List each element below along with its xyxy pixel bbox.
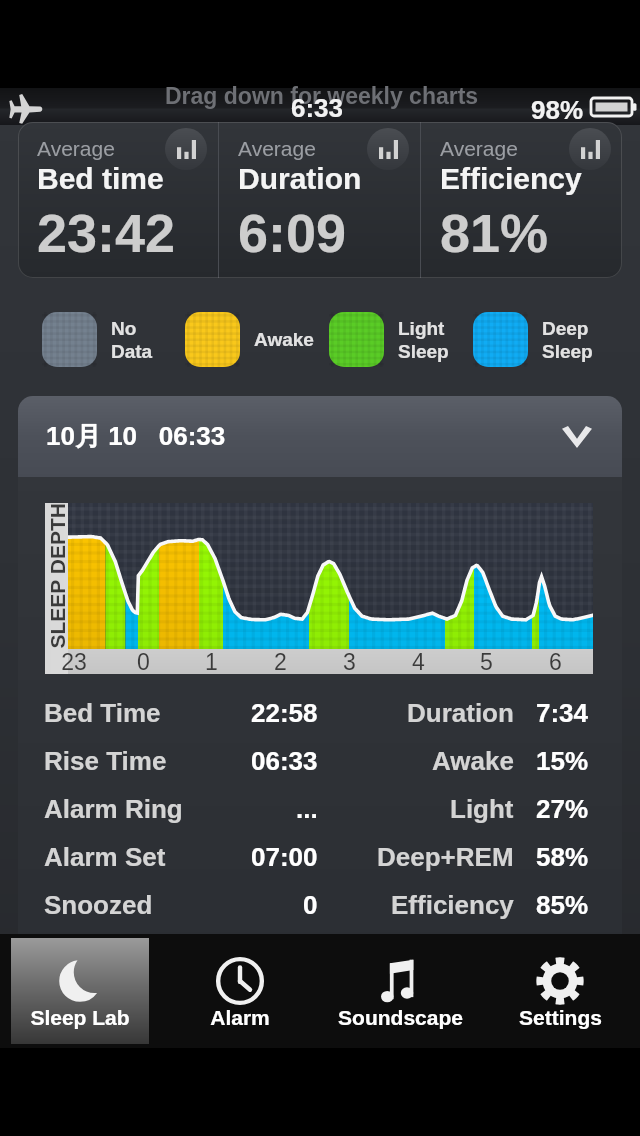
staticText: 6:09	[238, 203, 347, 263]
staticText: Settings	[519, 1006, 602, 1029]
staticText: Average	[440, 137, 518, 160]
staticText: Alarm Ring	[44, 794, 183, 823]
staticText: 27%	[536, 794, 589, 823]
staticText: SLEEP DEPTH	[45, 502, 68, 648]
staticText: 2	[274, 649, 287, 674]
button[interactable]: Alarm Ring	[18, 784, 622, 832]
staticText: Average	[37, 137, 115, 160]
staticText: 6	[549, 649, 562, 674]
staticText: 0	[303, 890, 318, 919]
button[interactable]: Expand	[562, 426, 592, 448]
staticText: 06:33	[251, 746, 318, 775]
button[interactable]: Settings	[491, 938, 629, 1044]
staticText: Alarm Set	[44, 842, 166, 871]
button[interactable]: Bed Time	[18, 688, 622, 736]
staticText: 6:33	[291, 93, 344, 122]
button[interactable]: Alarm Set	[18, 832, 622, 880]
staticText: 23	[61, 649, 87, 674]
staticText: Efficiency	[440, 162, 582, 196]
button[interactable]: Rise Time	[18, 736, 622, 784]
button[interactable]: Weekly chart	[569, 128, 611, 170]
staticText: 5	[480, 649, 493, 674]
button[interactable]: No Data	[42, 312, 153, 367]
button[interactable]: Average	[18, 122, 218, 278]
button[interactable]: Deep Sleep	[473, 312, 593, 367]
staticText: 7:34	[536, 698, 589, 727]
button[interactable]: 10月 10 06:33	[18, 396, 622, 477]
staticText: 85%	[536, 890, 589, 919]
staticText: Rise Time	[44, 746, 167, 775]
staticText: Light	[450, 794, 514, 823]
button[interactable]: Average	[219, 122, 420, 278]
button[interactable]: Light Sleep	[329, 312, 449, 367]
staticText: 58%	[536, 842, 589, 871]
staticText: 07:00	[251, 842, 318, 871]
staticText: 3	[343, 649, 356, 674]
staticText: 81%	[440, 203, 549, 263]
staticText: 23:42	[37, 203, 176, 263]
staticText: No Data	[111, 318, 153, 362]
button[interactable]: Awake	[185, 312, 314, 367]
staticText: 22:58	[251, 698, 318, 727]
staticText: Soundscape	[338, 1006, 463, 1029]
button[interactable]: Snoozed	[18, 880, 622, 928]
button[interactable]: Weekly chart	[165, 128, 207, 170]
staticText: Duration	[407, 698, 514, 727]
staticText: 98%	[531, 95, 584, 124]
staticText: Drag down for weekly charts	[165, 83, 479, 109]
staticText: Sleep Lab	[30, 1006, 130, 1029]
button[interactable]: Alarm	[171, 938, 309, 1044]
staticText: Deep Sleep	[542, 318, 593, 362]
staticText: 1	[205, 649, 218, 674]
button[interactable]: Sleep Lab	[11, 938, 149, 1044]
staticText: Awake	[432, 746, 514, 775]
staticText: Deep+REM	[377, 842, 514, 871]
staticText: Awake	[254, 329, 314, 350]
staticText: 4	[412, 649, 425, 674]
staticText: ...	[296, 794, 318, 823]
staticText: Average	[238, 137, 316, 160]
staticText: Efficiency	[391, 890, 514, 919]
staticText: Duration	[238, 162, 362, 196]
staticText: Bed Time	[44, 698, 161, 727]
button[interactable]: Weekly chart	[367, 128, 409, 170]
staticText: 15%	[536, 746, 589, 775]
button[interactable]: Soundscape	[331, 938, 469, 1044]
button[interactable]: Average	[421, 122, 622, 278]
staticText: Alarm	[210, 1006, 270, 1029]
staticText: 10月 10 06:33	[46, 420, 226, 453]
staticText: 0	[137, 649, 150, 674]
staticText: Light Sleep	[398, 318, 449, 362]
staticText: Bed time	[37, 162, 164, 196]
staticText: Snoozed	[44, 890, 153, 919]
